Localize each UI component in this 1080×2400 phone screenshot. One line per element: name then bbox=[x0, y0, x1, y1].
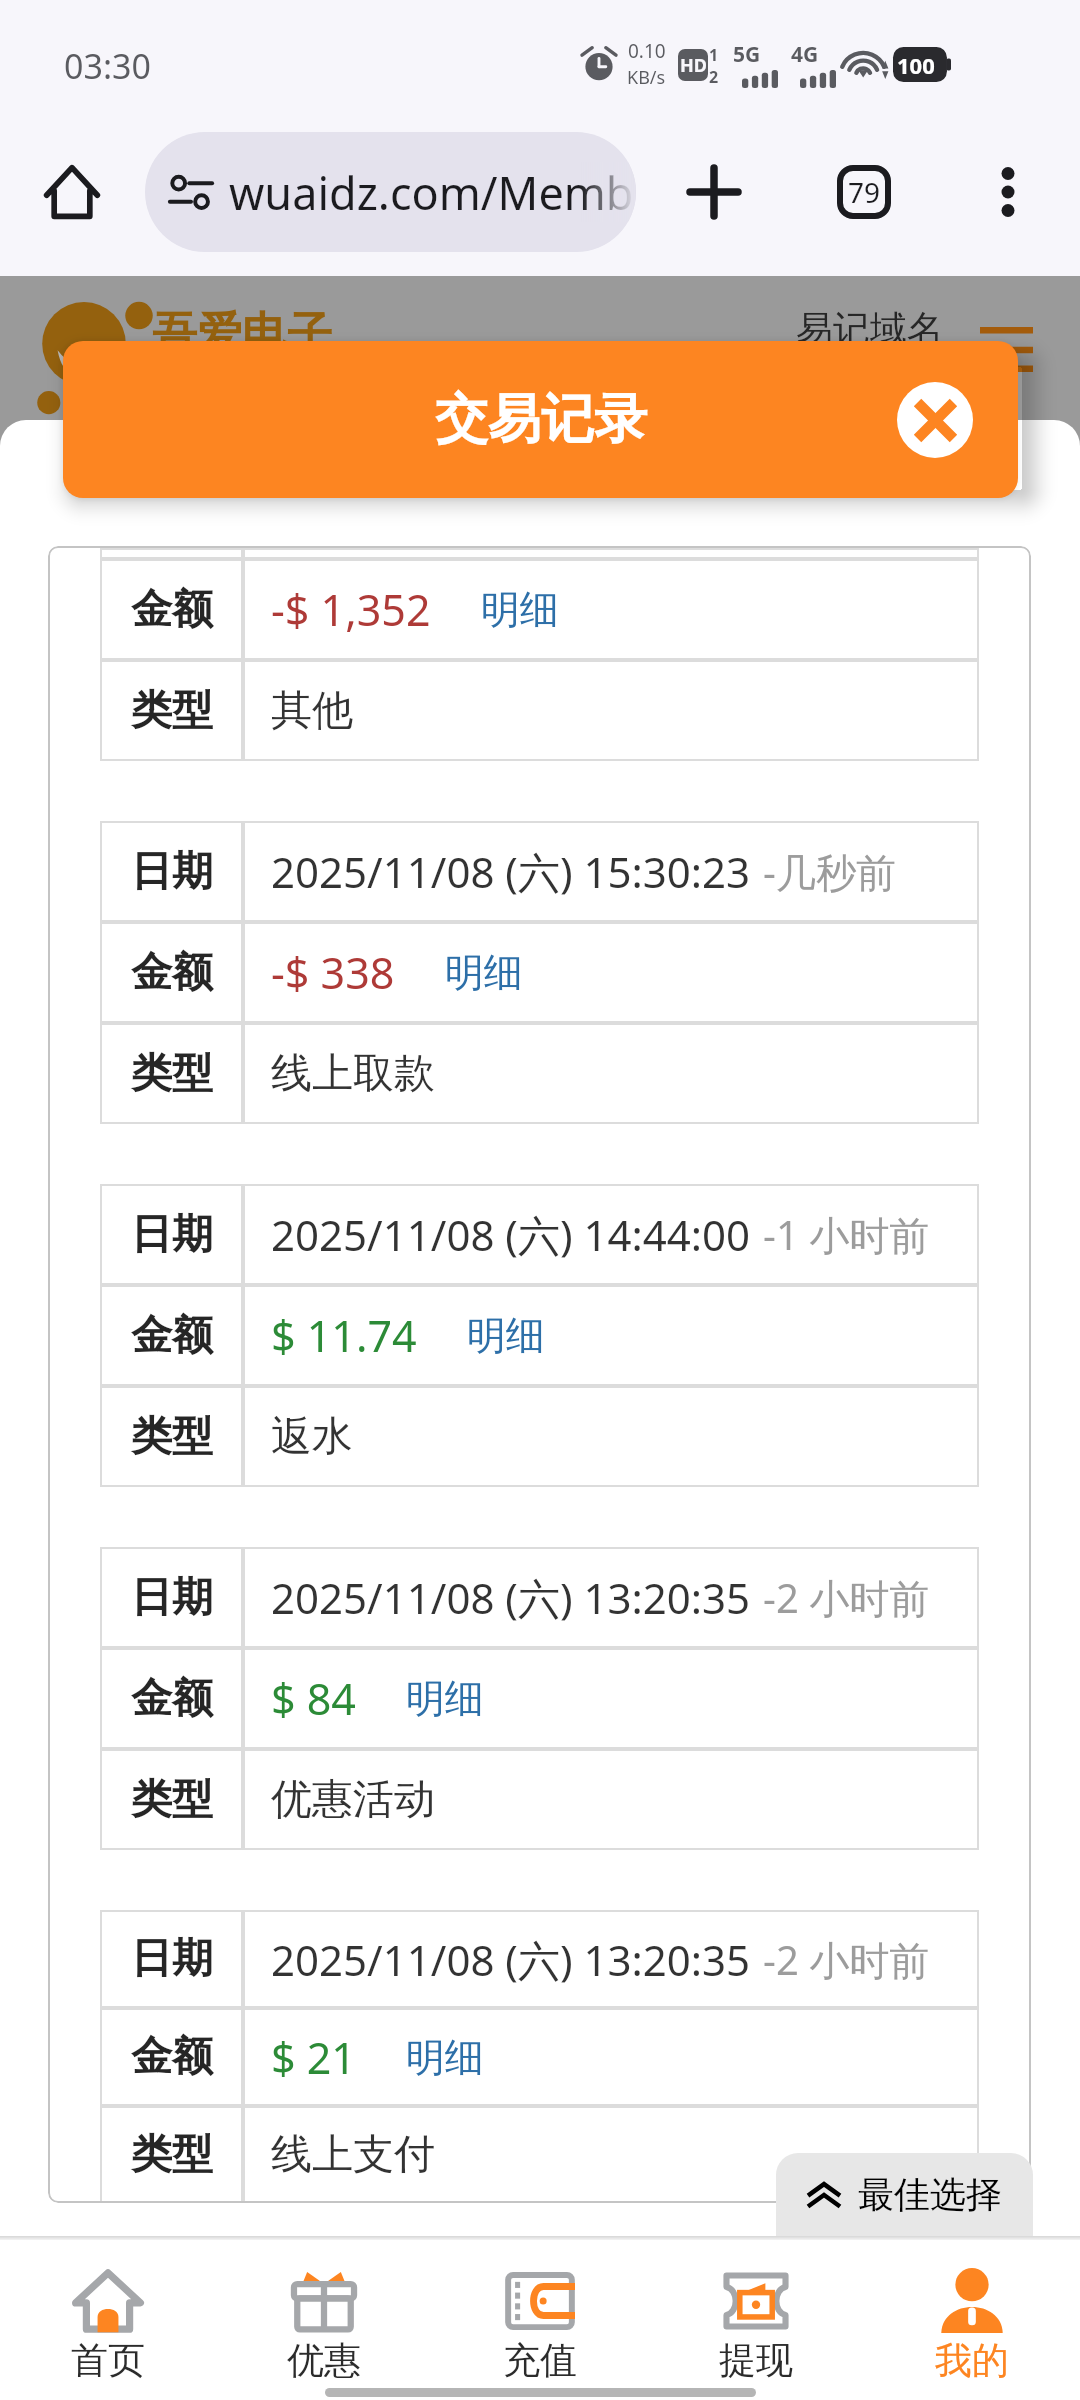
staticText: 易记域名 bbox=[796, 306, 944, 353]
button[interactable]: wuaidz.com/Memb bbox=[145, 132, 636, 252]
staticText: 提现 bbox=[719, 2337, 793, 2384]
staticText: 明细 bbox=[467, 1311, 545, 1360]
button[interactable]: 最佳选择 bbox=[776, 2153, 1033, 2236]
staticText: 金额 bbox=[131, 2031, 213, 2083]
staticText: 优惠 bbox=[287, 2337, 361, 2384]
staticText: 返水 bbox=[271, 1411, 353, 1463]
staticText: 2 bbox=[709, 66, 719, 88]
staticText: 2025/11/08 (六) 15:30:23 bbox=[271, 843, 751, 900]
staticText: wuaidz.com/Memb bbox=[229, 162, 634, 222]
staticText: 日期 bbox=[131, 1572, 213, 1624]
staticText: -$ 338 bbox=[271, 943, 395, 1002]
staticText: 2025/11/08 (六) 13:20:35 bbox=[271, 1569, 751, 1626]
staticText: $ 21 bbox=[271, 2028, 356, 2087]
staticText: 最佳选择 bbox=[858, 2172, 1002, 2217]
staticText: 我的 bbox=[935, 2337, 1009, 2384]
staticText: 03:30 bbox=[64, 43, 151, 89]
staticText: 100 bbox=[897, 50, 935, 80]
staticText: 5G bbox=[733, 40, 761, 69]
staticText: 0.10 bbox=[628, 38, 666, 64]
staticText: 类型 bbox=[131, 2129, 213, 2181]
staticText: 2025/11/08 (六) 14:44:00 bbox=[271, 1206, 751, 1263]
button[interactable]: 充值 bbox=[432, 2236, 648, 2400]
staticText: $ 84 bbox=[271, 1669, 356, 1728]
staticText: 吾爱电子 bbox=[152, 306, 332, 363]
staticText: 充值 bbox=[503, 2337, 577, 2384]
staticText: 金额 bbox=[131, 947, 213, 999]
staticText: 2025/11/08 (六) 13:20:35 bbox=[271, 1931, 751, 1988]
staticText: 1 bbox=[709, 44, 719, 66]
staticText: 明细 bbox=[406, 2033, 484, 2082]
staticText: -$ 1,352 bbox=[271, 580, 431, 639]
staticText: KB/s bbox=[627, 65, 666, 90]
staticText: HD bbox=[680, 53, 707, 78]
button[interactable]: 优惠 bbox=[216, 2236, 432, 2400]
staticText: 4G bbox=[791, 40, 819, 69]
staticText: 日期 bbox=[131, 846, 213, 898]
staticText: 明细 bbox=[481, 585, 559, 634]
staticText: -2 小时前 bbox=[763, 1932, 930, 1987]
button[interactable]: 提现 bbox=[648, 2236, 864, 2400]
staticText: -几秒前 bbox=[763, 844, 896, 899]
staticText: 明细 bbox=[445, 948, 523, 997]
staticText: 线上支付 bbox=[271, 2129, 435, 2181]
staticText: 金额 bbox=[131, 1673, 213, 1725]
staticText: $ 11.74 bbox=[271, 1306, 417, 1365]
staticText: 类型 bbox=[131, 1411, 213, 1463]
staticText: -2 小时前 bbox=[763, 1570, 930, 1625]
staticText: 线上取款 bbox=[271, 1048, 435, 1100]
staticText: 金额 bbox=[131, 584, 213, 636]
staticText: 类型 bbox=[131, 685, 213, 737]
button[interactable]: More options bbox=[964, 148, 1052, 236]
button[interactable]: Home bbox=[28, 148, 116, 236]
staticText: 优惠活动 bbox=[271, 1774, 435, 1826]
staticText: 类型 bbox=[131, 1774, 213, 1826]
staticText: -1 小时前 bbox=[763, 1207, 930, 1262]
staticText: 明细 bbox=[406, 1674, 484, 1723]
button[interactable]: Tabs bbox=[820, 148, 908, 236]
staticText: 其他 bbox=[271, 685, 353, 737]
button[interactable]: Close bbox=[897, 382, 973, 458]
staticText: 交易记录 bbox=[435, 386, 647, 453]
staticText: 79 bbox=[848, 173, 881, 211]
staticText: 日期 bbox=[131, 1209, 213, 1261]
staticText: 首页 bbox=[71, 2337, 145, 2384]
button[interactable]: 我的 bbox=[864, 2236, 1080, 2400]
button[interactable]: 首页 bbox=[0, 2236, 216, 2400]
staticText: 金额 bbox=[131, 1310, 213, 1362]
staticText: 类型 bbox=[131, 1048, 213, 1100]
button[interactable]: New tab bbox=[670, 148, 758, 236]
staticText: 日期 bbox=[131, 1933, 213, 1985]
